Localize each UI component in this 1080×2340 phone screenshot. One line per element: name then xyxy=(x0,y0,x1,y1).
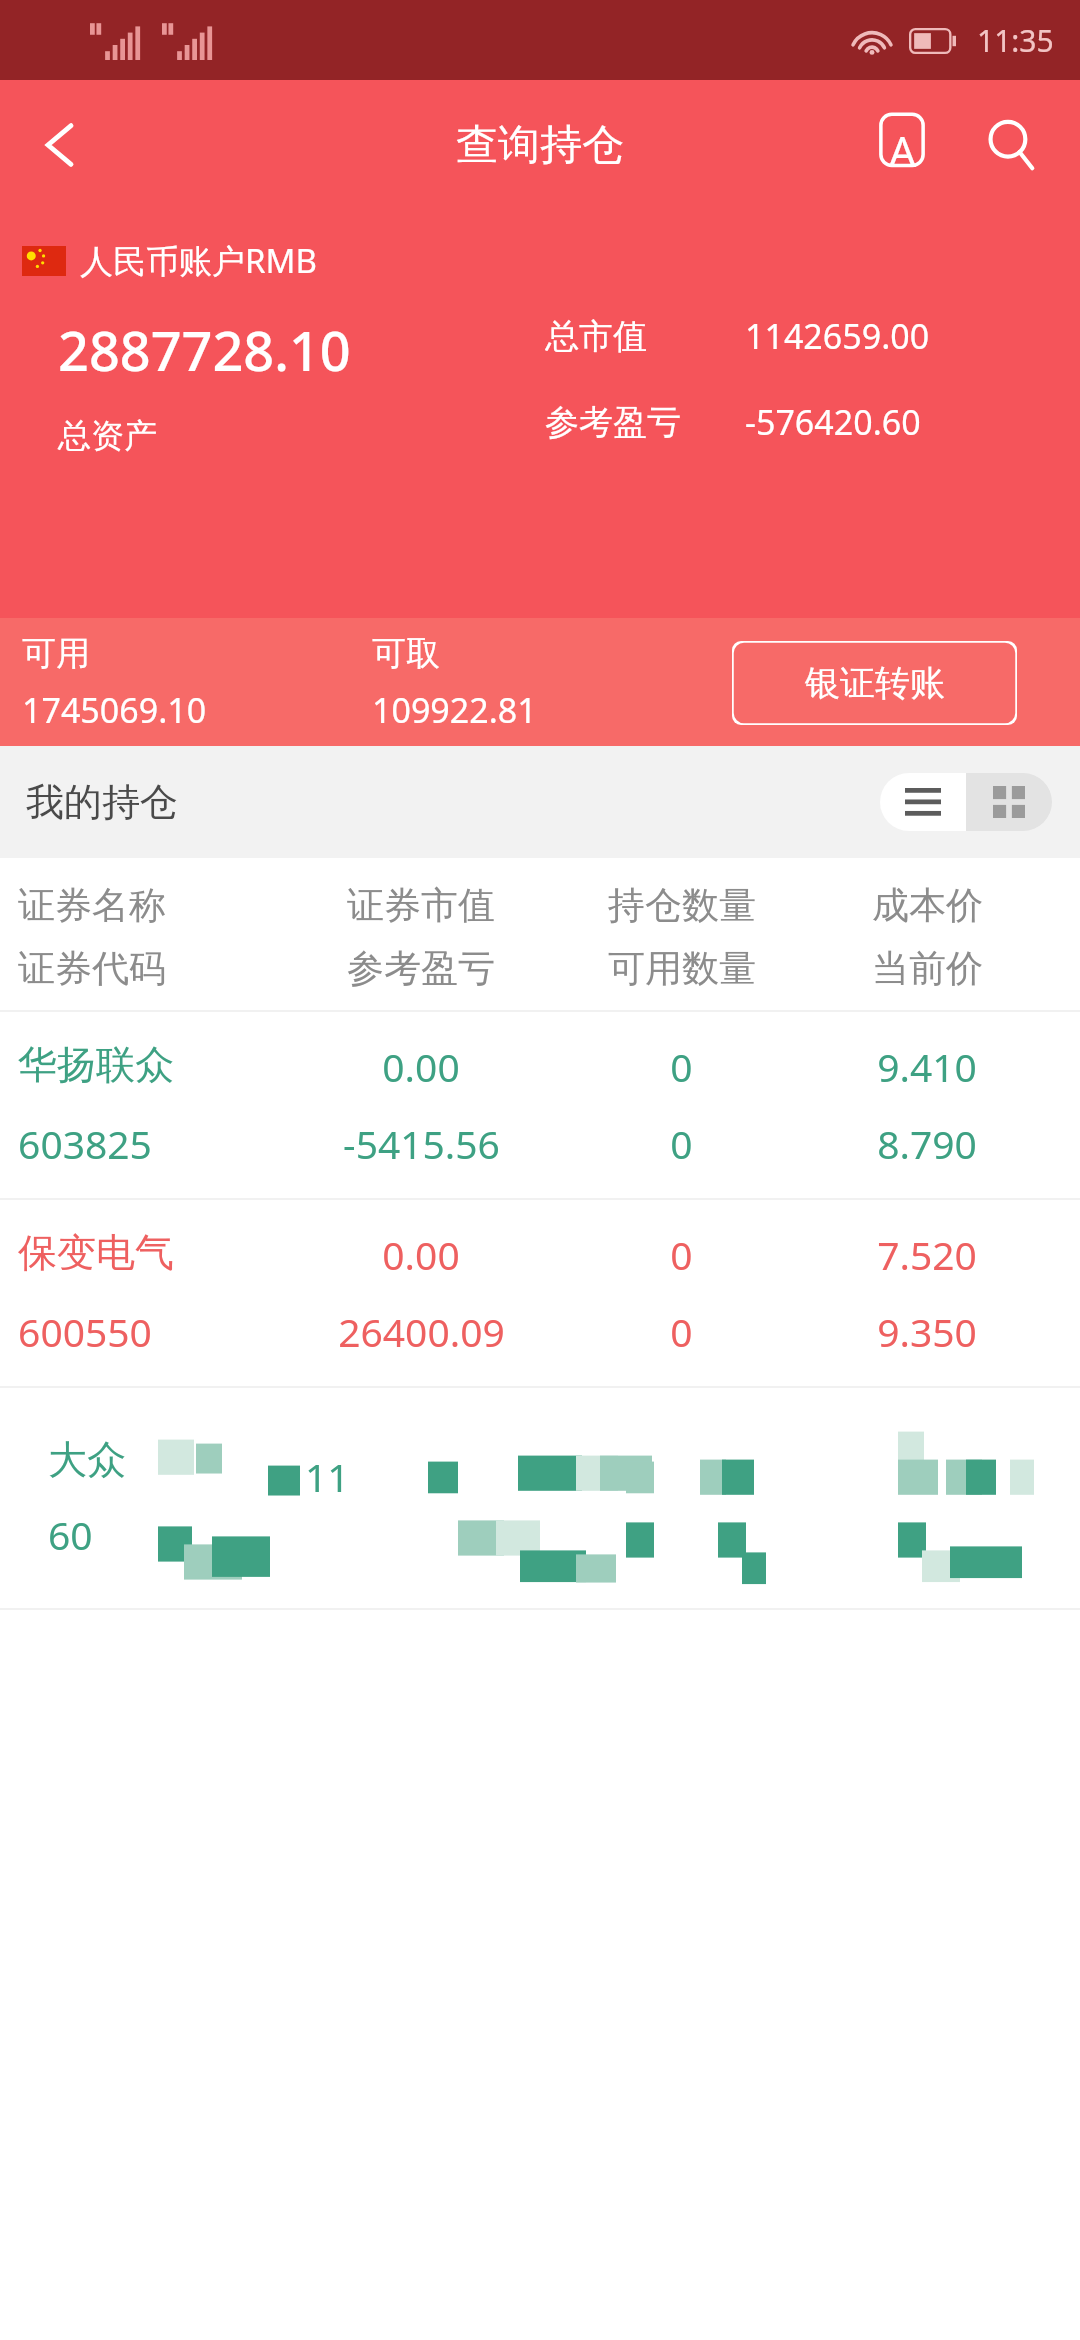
button[interactable]: 保变电气 xyxy=(0,1200,1080,1386)
staticText: 可取 xyxy=(372,632,440,675)
staticText: 保变电气 xyxy=(18,1228,174,1277)
staticText: 11 xyxy=(305,1450,350,1503)
staticText: 60 xyxy=(48,1508,93,1561)
button[interactable]: Back xyxy=(12,97,108,193)
staticText: 0 xyxy=(670,1040,693,1093)
staticText: 总市值 xyxy=(545,315,647,358)
staticText: 证券市值 xyxy=(347,882,495,929)
staticText: 成本价 xyxy=(872,882,983,929)
staticText: 当前价 xyxy=(872,945,983,992)
staticText: 9.350 xyxy=(877,1305,977,1358)
staticText: 人民币账户RMB xyxy=(80,238,317,283)
button[interactable]: Search xyxy=(966,99,1058,191)
staticText: 参考盈亏 xyxy=(545,401,681,444)
staticText: 2887728.10 xyxy=(58,313,351,387)
button[interactable]: List view xyxy=(880,773,966,831)
staticText: 总资产 xyxy=(58,415,157,457)
staticText: 可用数量 xyxy=(608,945,756,992)
button[interactable]: 银证转账 xyxy=(732,641,1017,725)
staticText: 7.520 xyxy=(877,1228,977,1281)
staticText: 查询持仓 xyxy=(456,119,624,172)
staticText: -576420.60 xyxy=(745,399,921,445)
staticText: 大众 xyxy=(48,1435,126,1484)
staticText: 银证转账 xyxy=(805,661,945,705)
staticText: 证券代码 xyxy=(18,945,166,992)
staticText: 0.00 xyxy=(382,1228,460,1281)
staticText: A xyxy=(889,122,916,179)
staticText: 0 xyxy=(670,1305,693,1358)
staticText: 华扬联众 xyxy=(18,1040,174,1089)
staticText: 9.410 xyxy=(877,1040,977,1093)
staticText: 证券名称 xyxy=(18,882,166,929)
staticText: 603825 xyxy=(18,1117,152,1170)
staticText: 0 xyxy=(670,1117,693,1170)
button[interactable]: Grid view xyxy=(966,773,1052,831)
staticText: 11:35 xyxy=(977,20,1054,61)
staticText: 0 xyxy=(670,1228,693,1281)
staticText: 0.00 xyxy=(382,1040,460,1093)
staticText: -5415.56 xyxy=(343,1117,500,1170)
staticText: 8.790 xyxy=(877,1117,977,1170)
staticText: 参考盈亏 xyxy=(347,945,495,992)
button[interactable]: 大众 xyxy=(0,1388,1080,1608)
staticText: 26400.09 xyxy=(338,1305,505,1358)
staticText: 我的持仓 xyxy=(26,778,178,826)
staticText: 109922.81 xyxy=(372,687,537,733)
button[interactable]: Font size xyxy=(856,99,948,191)
staticText: 持仓数量 xyxy=(608,882,756,929)
button[interactable]: 华扬联众 xyxy=(0,1012,1080,1198)
staticText: 600550 xyxy=(18,1305,152,1358)
staticText: 可用 xyxy=(22,632,90,675)
staticText: 1142659.00 xyxy=(745,313,930,359)
staticText: 1745069.10 xyxy=(22,687,207,733)
